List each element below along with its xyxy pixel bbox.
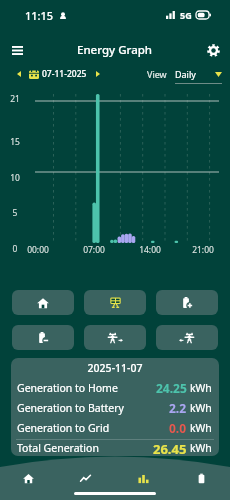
button[interactable]: Battery charge [156, 290, 218, 315]
staticText: 14:00 [132, 244, 168, 256]
button[interactable]: Previous day [11, 65, 26, 83]
staticText: 5 [4, 207, 26, 219]
staticText: 2025-11-07 [11, 361, 219, 375]
staticText: kWh [190, 401, 212, 415]
button[interactable]: Home consumption [12, 290, 74, 315]
button[interactable]: Battery [172, 467, 230, 489]
staticText: kWh [190, 441, 212, 455]
staticText: 21 [4, 93, 26, 105]
staticText: Generation to Home [17, 381, 118, 395]
staticText: 07:00 [76, 244, 112, 256]
staticText: 10 [4, 172, 26, 184]
button[interactable]: Import from grid [156, 325, 218, 350]
button[interactable]: Battery discharge [12, 325, 74, 350]
button[interactable]: Solar production [84, 290, 146, 315]
staticText: Generation to Grid [17, 421, 110, 435]
staticText: 07-11-2025 [42, 68, 87, 80]
staticText: kWh [190, 381, 212, 395]
button[interactable]: Daily [175, 63, 222, 85]
staticText: 11:15 [25, 8, 54, 23]
button[interactable]: Statistics [114, 467, 172, 489]
staticText: 15 [4, 136, 26, 148]
staticText: View [147, 68, 167, 80]
staticText: kWh [190, 421, 212, 435]
button[interactable]: Trends [57, 467, 114, 489]
staticText: Daily [175, 68, 196, 80]
staticText: 0 [4, 243, 26, 255]
staticText: 21:00 [185, 244, 221, 256]
staticText: Generation to Battery [17, 401, 124, 415]
button[interactable]: Home [0, 467, 57, 489]
button[interactable]: 07-11-2025 [29, 68, 87, 80]
staticText: 26.45 [153, 440, 187, 456]
staticText: 2.2 [169, 400, 187, 416]
button[interactable]: Menu [5, 38, 29, 62]
button[interactable]: Settings [201, 38, 225, 62]
staticText: 00:00 [20, 244, 56, 256]
staticText: 5G [180, 9, 192, 21]
button[interactable]: Next day [90, 65, 105, 83]
button[interactable]: Export to grid [84, 325, 146, 350]
staticText: 24.25 [156, 380, 187, 396]
staticText: 0.0 [169, 420, 187, 436]
staticText: Total Generation [17, 441, 99, 455]
staticText: Energy Graph [77, 42, 153, 58]
